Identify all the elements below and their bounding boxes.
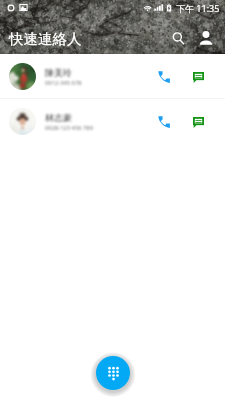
button[interactable]: Account [191, 23, 221, 53]
button[interactable]: Dialpad [96, 356, 130, 390]
button[interactable]: Call [149, 62, 179, 92]
staticText: 0912-345 678 [45, 79, 82, 87]
button[interactable]: Message [183, 62, 213, 92]
button[interactable]: 陳美玲 [0, 54, 225, 99]
button[interactable]: Message [183, 107, 213, 137]
staticText: 陳美玲 [45, 67, 72, 78]
button[interactable]: 林志豪 [0, 99, 225, 144]
staticText: 林志豪 [45, 112, 72, 123]
staticText: 快速連絡人 [9, 30, 82, 48]
button[interactable]: Call [149, 107, 179, 137]
button[interactable]: Search [163, 23, 193, 53]
staticText: 下午 11:35 [176, 2, 220, 14]
staticText: 0928-123 456 789 [45, 124, 93, 132]
